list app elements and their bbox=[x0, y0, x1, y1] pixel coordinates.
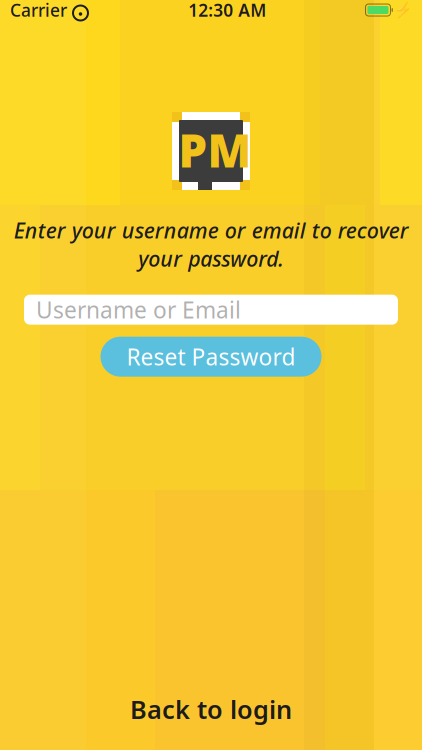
staticText: PM bbox=[178, 120, 251, 180]
staticText: 12:30 AM bbox=[188, 0, 266, 21]
staticText bbox=[67, 0, 72, 21]
staticText: Back to login bbox=[130, 692, 292, 726]
staticText: Username or Email bbox=[36, 295, 241, 325]
staticText: Enter your username or email to recover … bbox=[13, 216, 408, 273]
button[interactable]: Username or Email bbox=[24, 295, 398, 325]
staticText: Carrier bbox=[10, 0, 67, 21]
button[interactable]: Reset Password bbox=[100, 337, 321, 377]
staticText: Reset Password bbox=[126, 342, 295, 372]
staticText: ⚡ bbox=[394, 2, 412, 18]
button[interactable]: Back to login bbox=[100, 684, 322, 734]
